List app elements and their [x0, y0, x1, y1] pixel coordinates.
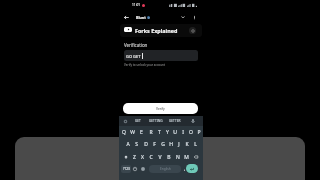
button[interactable]: D: [141, 138, 150, 150]
staticText: GETTER: [169, 119, 181, 123]
button[interactable]: O: [187, 126, 195, 138]
button[interactable]: Refresh: [189, 27, 196, 34]
button[interactable]: V: [155, 151, 164, 163]
staticText: A: [126, 141, 130, 148]
staticText: J: [178, 141, 180, 148]
button[interactable]: I: [179, 126, 187, 138]
staticText: P: [197, 129, 201, 136]
button[interactable]: GO GET: [124, 50, 198, 61]
staticText: K: [185, 141, 189, 148]
button[interactable]: G: [159, 138, 167, 150]
button[interactable]: Shift: [121, 151, 130, 163]
button[interactable]: GETTING: [148, 116, 164, 126]
button[interactable]: Y: [163, 126, 171, 138]
button[interactable]: Verify: [123, 103, 198, 114]
staticText: English: [160, 167, 171, 171]
staticText: GETTING: [149, 119, 163, 123]
button[interactable]: P: [195, 126, 203, 138]
staticText: V: [158, 154, 162, 161]
button[interactable]: C: [146, 151, 155, 163]
button[interactable]: GET: [132, 116, 144, 126]
button[interactable]: U: [171, 126, 179, 138]
button[interactable]: B: [164, 151, 173, 163]
button[interactable]: Clipboard: [123, 119, 128, 124]
staticText: U: [173, 129, 177, 136]
button[interactable]: L: [191, 138, 199, 150]
staticText: C: [149, 154, 153, 161]
staticText: Verify to unlock your account: [124, 63, 165, 67]
staticText: Verify: [156, 107, 165, 111]
staticText: O: [189, 129, 193, 136]
button[interactable]: Space: [149, 165, 181, 173]
button[interactable]: F: [150, 138, 159, 150]
button[interactable]: J: [175, 138, 183, 150]
staticText: GO GET: [126, 54, 141, 59]
staticText: X: [141, 154, 144, 161]
button[interactable]: Forks Explained: [120, 24, 202, 37]
button[interactable]: Enter: [186, 164, 198, 173]
staticText: G: [161, 141, 165, 148]
staticText: I: [182, 129, 184, 136]
button[interactable]: E: [137, 126, 146, 138]
staticText: L: [194, 141, 197, 148]
button[interactable]: K: [183, 138, 191, 150]
staticText: W: [130, 129, 135, 136]
button[interactable]: T: [155, 126, 163, 138]
button[interactable]: H: [167, 138, 175, 150]
button[interactable]: W: [128, 126, 137, 138]
button[interactable]: Backspace: [191, 151, 201, 163]
staticText: D: [144, 141, 148, 148]
staticText: T: [158, 129, 161, 136]
button[interactable]: ?123: [121, 165, 131, 173]
button[interactable]: R: [146, 126, 155, 138]
staticText: ?123: [123, 167, 130, 171]
button[interactable]: M: [182, 151, 191, 163]
staticText: R: [149, 129, 153, 136]
button[interactable]: Emoji: [131, 163, 138, 175]
staticText: M: [184, 154, 189, 161]
staticText: N: [176, 154, 180, 161]
staticText: Y: [166, 129, 169, 136]
staticText: 11:01: [132, 3, 141, 7]
button[interactable]: Back: [121, 12, 131, 22]
button[interactable]: More options: [189, 12, 199, 22]
staticText: E: [140, 129, 143, 136]
button[interactable]: A: [123, 138, 132, 150]
button[interactable]: Period: [181, 163, 187, 175]
button[interactable]: N: [173, 151, 182, 163]
staticText: Q: [122, 129, 126, 136]
button[interactable]: Z: [130, 151, 138, 163]
staticText: Blunt: [136, 15, 146, 20]
staticText: Verification: [124, 42, 148, 48]
staticText: GET: [135, 119, 141, 123]
button[interactable]: Language: [139, 163, 146, 175]
staticText: Z: [133, 154, 136, 161]
staticText: Forks Explained: [135, 27, 178, 34]
button[interactable]: X: [138, 151, 146, 163]
button[interactable]: GETTER: [167, 116, 183, 126]
staticText: H: [169, 141, 173, 148]
button[interactable]: S: [132, 138, 141, 150]
staticText: S: [135, 141, 138, 148]
staticText: F: [153, 141, 156, 148]
button[interactable]: Voice input: [190, 118, 195, 123]
staticText: B: [167, 154, 171, 161]
button[interactable]: Expand: [178, 12, 188, 22]
button[interactable]: Q: [119, 126, 128, 138]
